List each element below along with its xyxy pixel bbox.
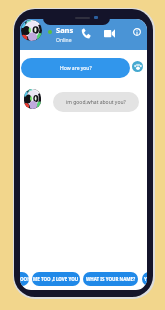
staticText: im good,what about you? [66,99,126,106]
button[interactable]: ME TOO ,I LOVE YOU [32,272,80,286]
staticText: WHAT IS YOUR NAME? [86,276,136,282]
button[interactable]: Call [79,26,93,40]
button[interactable]: WHAT IS YOUR NAME? [83,272,138,286]
button[interactable]: im good,what about you? [53,92,139,112]
button[interactable]: YES I DO [142,272,147,286]
staticText: ME TOO ,I LOVE YOU [33,276,79,282]
button[interactable]: How are you? [21,58,130,78]
button[interactable]: Video call [102,26,116,40]
staticText: Sans [56,25,74,35]
staticText: Online [56,37,72,44]
staticText: YES I DO [144,276,147,282]
staticText: SEE YOU SOON RN [20,276,29,282]
button[interactable]: Info [130,25,144,39]
staticText: How are you? [60,65,92,72]
button[interactable]: SEE YOU SOON RN [20,272,29,286]
